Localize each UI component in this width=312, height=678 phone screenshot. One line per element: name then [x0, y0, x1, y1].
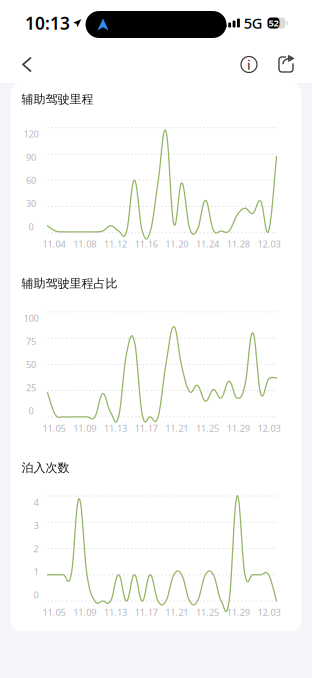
staticText: 11.05 — [42, 606, 65, 618]
staticText: 12.03 — [257, 422, 280, 434]
staticText: 辅助驾驶里程 — [21, 92, 93, 107]
staticText: 11.24 — [196, 238, 219, 250]
staticText: 11.16 — [135, 238, 158, 250]
staticText: 11.17 — [135, 422, 158, 434]
staticText: 60 — [26, 174, 36, 186]
staticText: 0 — [28, 220, 33, 233]
staticText: 4 — [33, 496, 38, 508]
staticText: 3 — [33, 519, 38, 532]
staticText: 辅助驾驶里程占比 — [21, 276, 117, 291]
staticText: 11.05 — [42, 422, 65, 434]
staticText: 30 — [26, 197, 36, 210]
staticText: 11.09 — [73, 422, 96, 434]
staticText: 11.28 — [227, 238, 250, 250]
staticText: 100 — [23, 312, 38, 324]
staticText: 0 — [33, 589, 38, 601]
staticText: 52 — [268, 17, 278, 29]
staticText: 90 — [26, 151, 36, 163]
staticText: 11.13 — [104, 422, 127, 434]
staticText: 10:13 — [25, 11, 70, 34]
staticText: 11.25 — [196, 606, 219, 618]
staticText: 11.04 — [42, 238, 65, 250]
staticText: 11.29 — [227, 606, 250, 618]
staticText: 11.21 — [165, 606, 188, 618]
staticText: 50 — [26, 358, 36, 371]
staticText: 11.12 — [104, 238, 127, 250]
staticText: 11.25 — [196, 422, 219, 434]
staticText: 0 — [28, 404, 33, 417]
staticText: 泊入次数 — [21, 460, 69, 475]
staticText: 11.13 — [104, 606, 127, 618]
staticText: 11.29 — [227, 422, 250, 434]
staticText: 12.03 — [257, 606, 280, 618]
staticText: 11.20 — [165, 238, 188, 250]
button[interactable]: Share — [272, 49, 300, 80]
staticText: 5G — [244, 13, 263, 33]
button[interactable]: Info — [232, 46, 266, 82]
staticText: 120 — [23, 128, 38, 140]
staticText: 11.09 — [73, 606, 96, 618]
staticText: 11.21 — [165, 422, 188, 434]
staticText: 2 — [33, 542, 38, 555]
button[interactable]: Back — [10, 47, 43, 82]
staticText: 1 — [33, 565, 38, 578]
staticText: 12.03 — [257, 238, 280, 250]
staticText: 25 — [26, 381, 36, 394]
staticText: 11.08 — [73, 238, 96, 250]
staticText: 75 — [26, 335, 36, 347]
staticText: 11.17 — [135, 606, 158, 618]
staticText: i — [247, 56, 251, 73]
